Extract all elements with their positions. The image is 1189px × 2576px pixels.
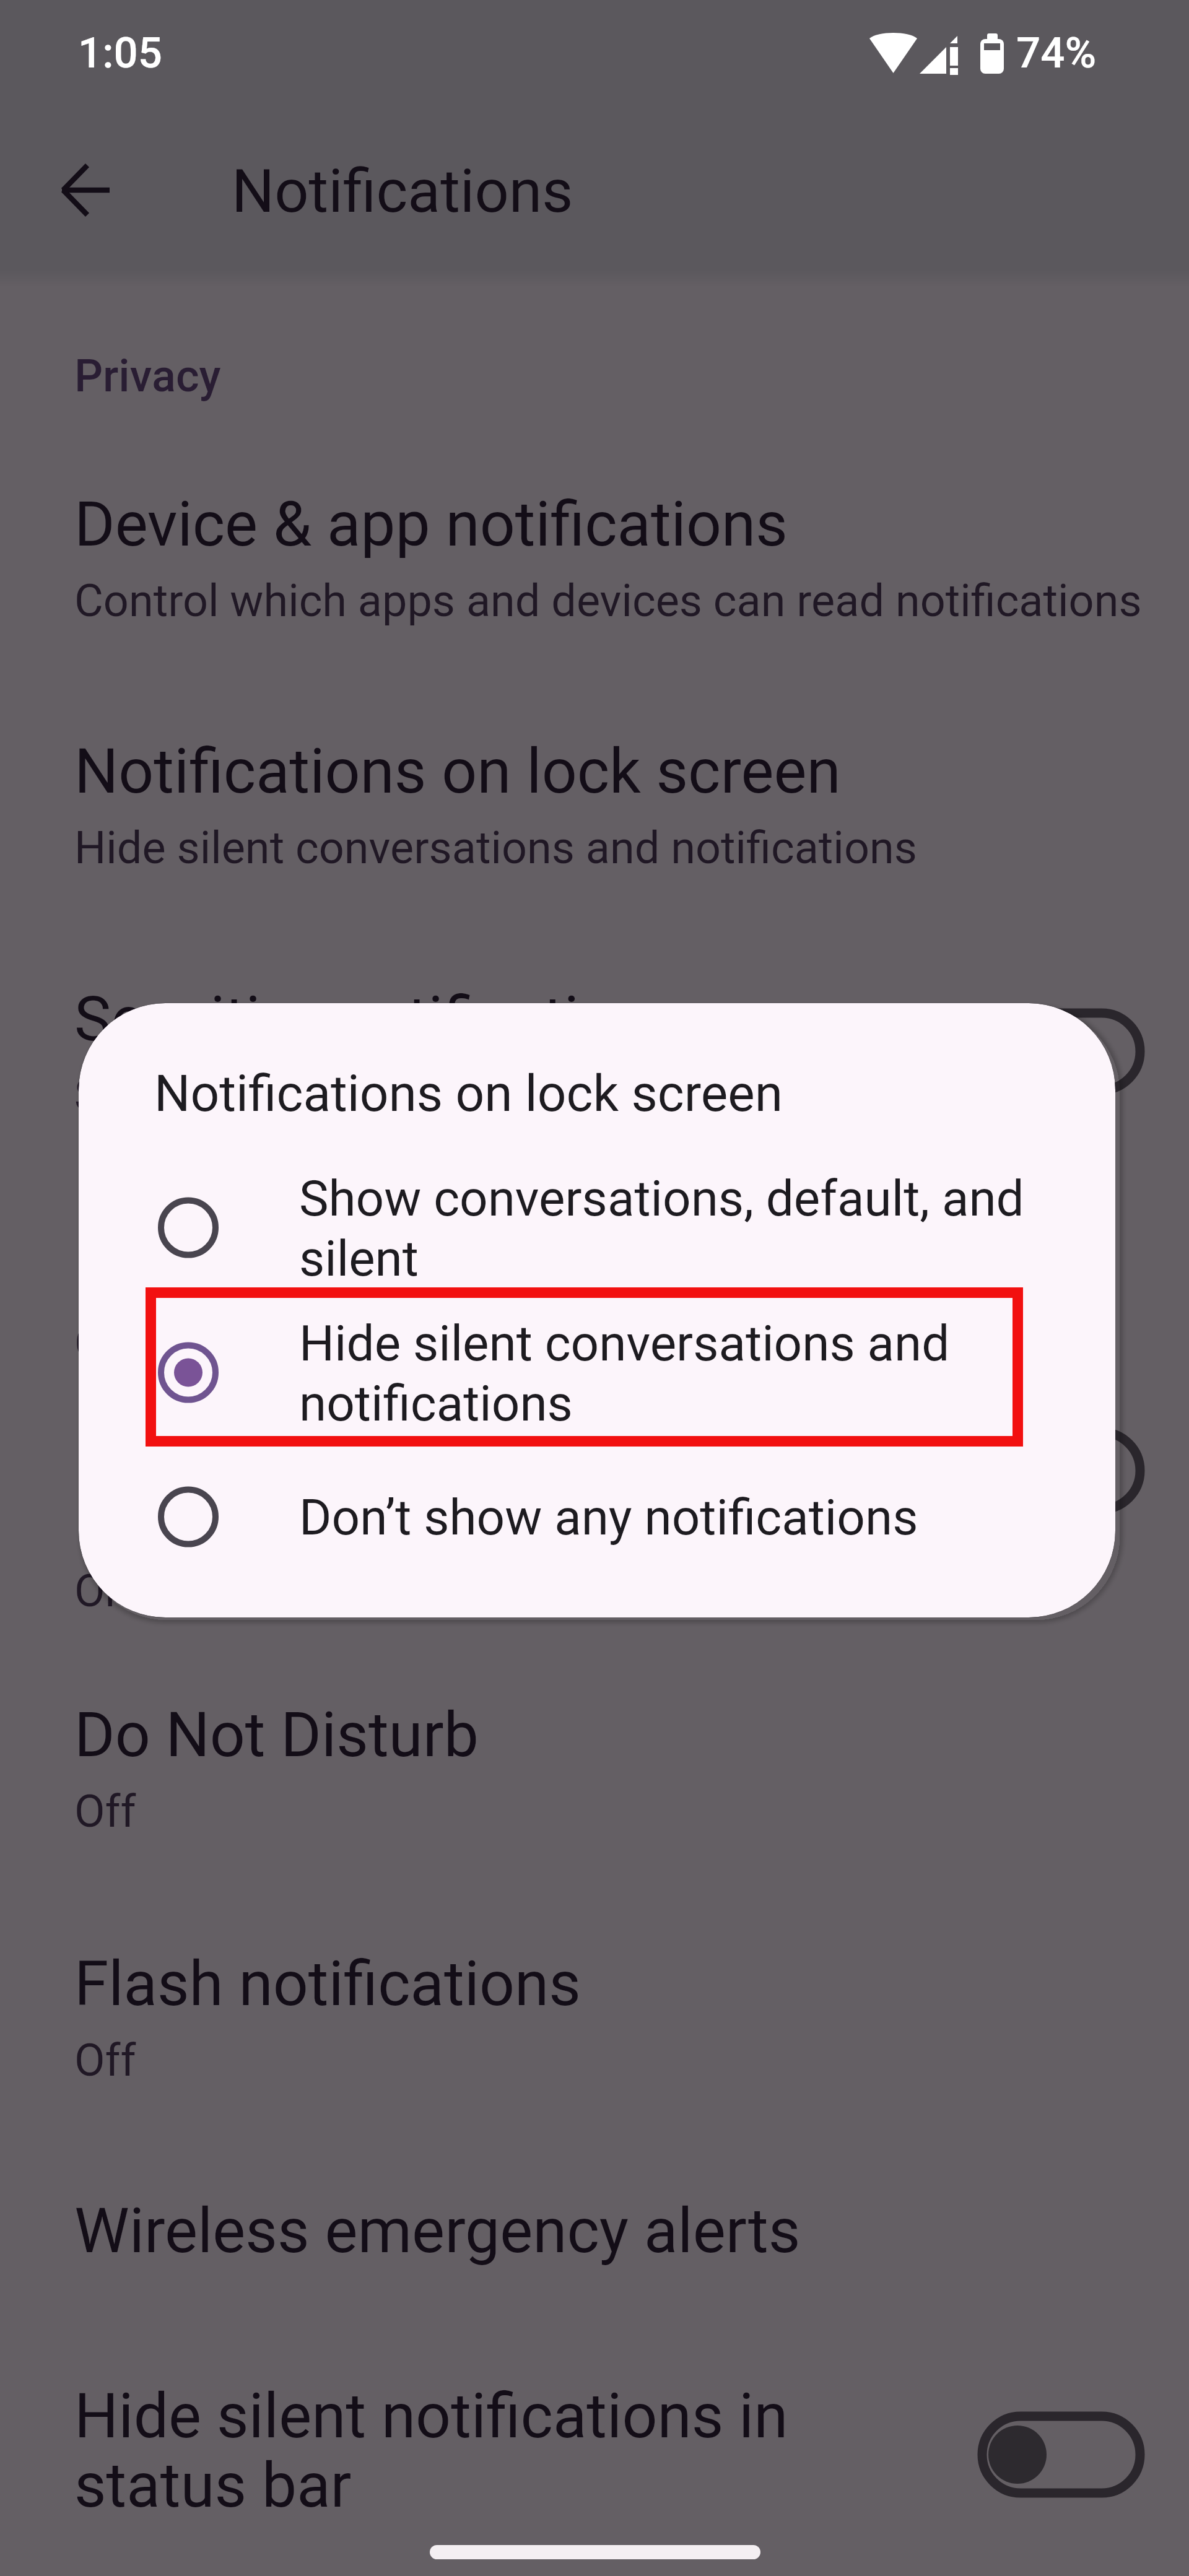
staticText: Hide silent conversations and notificati… [74, 823, 917, 874]
staticText: Off [74, 1318, 136, 1369]
button[interactable] [0, 1893, 1189, 2141]
button[interactable]: Toggle setting [977, 1008, 1146, 1095]
button[interactable] [0, 681, 1189, 928]
staticText: Wireless emergency alerts [74, 2197, 801, 2266]
staticText: Don’t show any notifications [299, 1487, 918, 1547]
button[interactable] [0, 1644, 1189, 1892]
staticText: Show conversations, default, and silent [299, 1168, 1024, 1288]
staticText: Notification history [74, 1233, 597, 1302]
staticText: Do Not Disturb [74, 1701, 479, 1770]
staticText: Device & app notifications [74, 490, 788, 560]
button[interactable] [0, 2140, 1189, 2388]
staticText: Notifications on lock screen [154, 1066, 783, 1123]
staticText: Off [74, 1786, 136, 1837]
button[interactable] [0, 433, 1189, 681]
button[interactable] [0, 2325, 1189, 2573]
staticText: 74% [1016, 28, 1097, 78]
staticText: Notifications on lock screen [74, 738, 841, 807]
staticText: Flash notifications [74, 1950, 581, 2019]
staticText: Hide silent conversations and notificati… [299, 1313, 950, 1433]
button[interactable]: Toggle setting [977, 2411, 1146, 2498]
button[interactable]: Navigate up [36, 141, 135, 240]
button[interactable]: Toggle setting [977, 1427, 1146, 1514]
button[interactable] [0, 928, 1189, 1176]
staticText: Notifications [232, 159, 573, 226]
button[interactable]: Hide silent conversations and notificati… [79, 1300, 1115, 1445]
staticText: Bubbles [74, 1481, 297, 1550]
button[interactable] [0, 1176, 1189, 1424]
button[interactable] [0, 1424, 1189, 1671]
staticText: Sensitive notifications [74, 985, 681, 1055]
button[interactable]: Don’t show any notifications [79, 1445, 1115, 1589]
staticText: Privacy [74, 351, 221, 402]
staticText: Show sensitive content when locked [74, 1071, 792, 1121]
staticText: Off [74, 2035, 136, 2086]
staticText: 1:05 [78, 28, 162, 78]
button[interactable]: Show conversations, default, and silent [79, 1155, 1115, 1300]
staticText: Hide silent notifications in status bar [74, 2382, 788, 2521]
staticText: Control which apps and devices can read … [74, 576, 1142, 627]
staticText: On [74, 1566, 130, 1617]
